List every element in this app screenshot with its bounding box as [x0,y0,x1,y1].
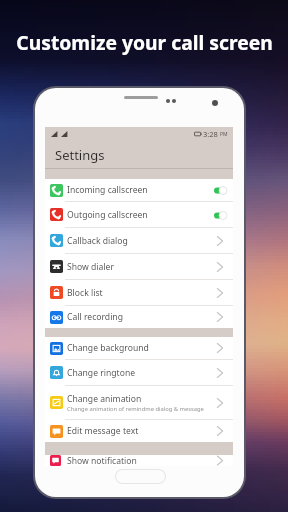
button[interactable]: Toggle [212,205,228,225]
button[interactable]: Open [212,307,228,327]
staticText: Show dialer [67,261,114,273]
staticText: Callback dialog [67,235,128,247]
staticText: Call recording [67,311,123,323]
button[interactable]: Change animation [45,386,233,419]
button[interactable]: Open [212,455,228,466]
button[interactable]: Open [212,421,228,441]
button[interactable]: Block list [45,280,233,305]
button[interactable]: Open [212,393,228,413]
staticText: Show notification [67,455,137,466]
staticText: Change animation of remindme dialog & me… [67,405,204,413]
button[interactable]: Edit message text [45,420,233,442]
staticText: Customize your call screen [16,29,273,55]
staticText: Block list [67,287,103,299]
button[interactable]: Open [212,231,228,251]
button[interactable]: Toggle [212,180,228,200]
button[interactable]: Open [212,257,228,277]
button[interactable]: Incoming callscreen [45,179,233,201]
button[interactable]: Open [212,363,228,383]
staticText: Edit message text [67,425,139,437]
staticText: Settings [55,146,105,164]
staticText: Incoming callscreen [67,184,148,196]
staticText: 3:28 [203,129,218,139]
staticText: Outgoing callscreen [67,209,148,221]
button[interactable]: Show dialer [45,254,233,279]
staticText: PM [220,131,228,138]
button[interactable]: Call recording [45,306,233,328]
button[interactable]: Outgoing callscreen [45,202,233,227]
button[interactable]: Open [212,338,228,358]
button[interactable]: Change background [45,337,233,359]
staticText: Change ringtone [67,367,136,379]
button[interactable]: Callback dialog [45,228,233,253]
button[interactable]: Show notification [45,455,233,466]
staticText: Change animation [67,393,142,405]
button[interactable]: Change ringtone [45,360,233,385]
staticText: Change background [67,342,149,354]
button[interactable]: Open [212,283,228,303]
